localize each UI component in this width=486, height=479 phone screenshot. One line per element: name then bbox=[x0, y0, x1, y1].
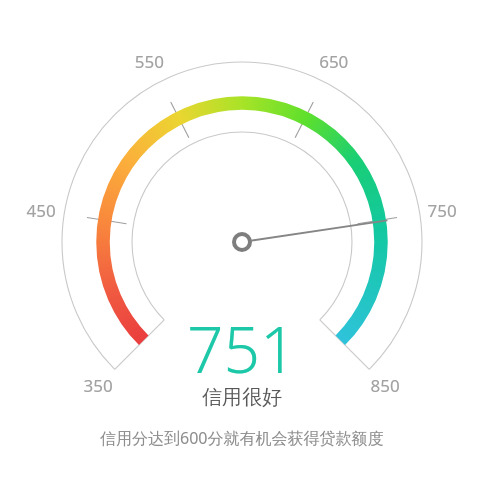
button[interactable]: Credit score gauge, 751, 信用很好 bbox=[0, 0, 486, 479]
